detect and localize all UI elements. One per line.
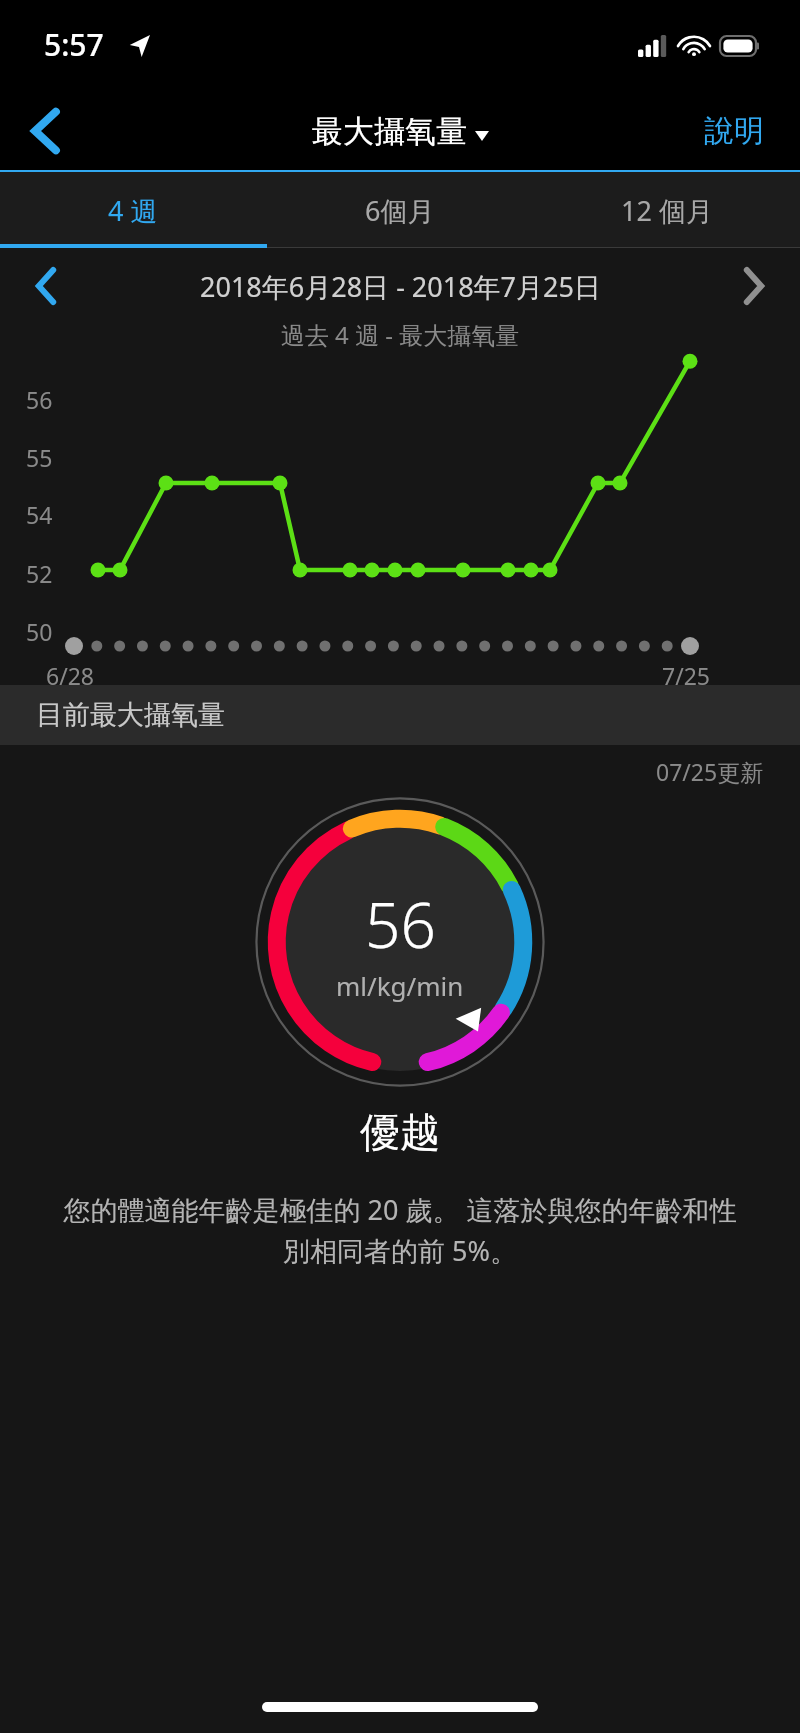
staticText: 最大攝氧量: [312, 112, 467, 151]
staticText: 56: [26, 384, 53, 415]
staticText: 4 週: [108, 192, 158, 229]
staticText: ml/kg/min: [336, 968, 464, 1003]
staticText: 12 個月: [621, 192, 713, 229]
button[interactable]: Back: [0, 92, 90, 170]
staticText: 您的體適能年齡是極佳的 20 歲。 這落於與您的年齡和性別相同者的前 5%。: [60, 1191, 740, 1269]
staticText: 07/25更新: [656, 756, 764, 787]
staticText: 56: [365, 882, 436, 966]
staticText: 52: [26, 558, 53, 589]
button[interactable]: 最大攝氧量: [312, 112, 489, 151]
button[interactable]: Next period: [730, 262, 778, 310]
staticText: 優越: [0, 1107, 800, 1157]
button[interactable]: Previous period: [22, 262, 70, 310]
staticText: 5:57: [44, 24, 104, 65]
button[interactable]: 12 個月: [533, 172, 800, 248]
staticText: 過去 4 週 - 最大攝氧量: [0, 318, 800, 351]
staticText: 2018年6月28日 - 2018年7月25日: [200, 268, 601, 305]
button[interactable]: 說明: [668, 92, 800, 170]
button[interactable]: 4 週: [0, 172, 266, 248]
staticText: 50: [26, 616, 53, 647]
button[interactable]: 6個月: [266, 172, 533, 248]
staticText: 目前最大攝氧量: [36, 698, 225, 732]
staticText: 54: [26, 499, 53, 530]
staticText: 說明: [704, 112, 764, 150]
staticText: 7/25: [662, 660, 711, 691]
staticText: 6個月: [365, 192, 435, 229]
staticText: 6/28: [46, 660, 95, 691]
staticText: 55: [26, 442, 53, 473]
